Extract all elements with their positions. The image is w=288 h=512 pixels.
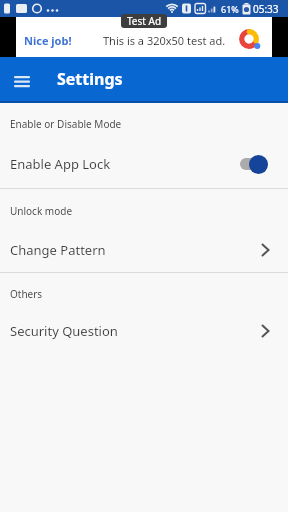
button[interactable]: Enable App Lock xyxy=(0,144,288,184)
staticText: This is a 320x50 test ad. xyxy=(103,33,226,48)
staticText: Nice job! xyxy=(24,33,72,48)
staticText: 05:33 xyxy=(253,2,279,16)
staticText: Enable or Disable Mode xyxy=(10,117,122,131)
staticText: Unlock mode xyxy=(10,204,73,218)
button[interactable]: Change Pattern xyxy=(0,230,288,270)
button[interactable] xyxy=(6,64,38,96)
staticText: 61% xyxy=(221,3,239,15)
staticText: Test Ad xyxy=(127,14,162,28)
staticText: Settings xyxy=(57,68,123,90)
staticText: Enable App Lock xyxy=(10,155,111,173)
staticText: Others xyxy=(10,287,43,301)
button[interactable]: Security Question xyxy=(0,311,288,351)
staticText: Security Question xyxy=(10,322,118,340)
button[interactable]: Nice job! xyxy=(16,17,272,57)
staticText: Change Pattern xyxy=(10,241,106,259)
